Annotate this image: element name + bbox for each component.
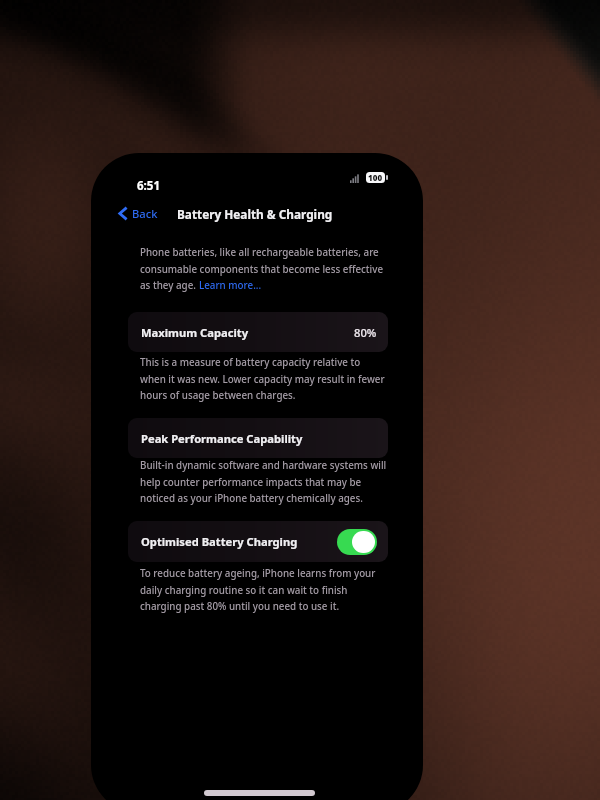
button[interactable]: Peak Performance Capability [128,418,388,458]
staticText: Optimised Battery Charging [141,534,298,549]
button[interactable]: Learn more... [199,279,262,292]
staticText: as they age. [140,279,199,292]
staticText: Built-in dynamic software and hardware s… [140,459,387,472]
staticText: Maximum Capacity [141,325,249,340]
button[interactable]: Optimised Battery Charging [128,521,388,562]
staticText: 100 [368,172,383,183]
staticText: when it was new. Lower capacity may resu… [140,373,385,386]
button[interactable]: Maximum Capacity [128,312,388,352]
button[interactable]: Back [116,203,161,223]
staticText: To reduce battery ageing, iPhone learns … [140,567,376,580]
staticText: Back [132,206,158,221]
staticText: noticed as your iPhone battery chemicall… [140,492,363,505]
staticText: daily charging routine so it can wait to… [140,584,348,597]
staticText: hours of usage between charges. [140,389,296,402]
staticText: charging past 80% until you need to use … [140,600,340,613]
staticText: Phone batteries, like all rechargeable b… [140,246,379,259]
staticText: help counter performance impacts that ma… [140,476,362,489]
staticText: Peak Performance Capability [141,431,303,446]
staticText: consumable components that become less e… [140,263,384,276]
staticText: 6:51 [137,178,160,194]
staticText: Battery Health & Charging [177,206,333,222]
staticText: This is a measure of battery capacity re… [140,356,361,369]
button[interactable]: Optimised Battery Charging [337,529,377,555]
staticText: 80% [354,325,377,340]
